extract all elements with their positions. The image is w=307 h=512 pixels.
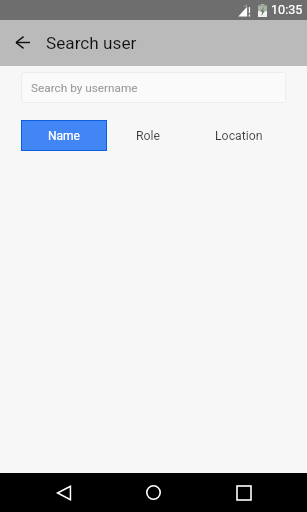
button[interactable]: Name: [22, 121, 106, 150]
staticText: Name: [48, 129, 80, 143]
staticText: Role: [136, 129, 161, 143]
button[interactable]: Back: [44, 473, 83, 512]
button[interactable]: Home: [134, 473, 173, 512]
button[interactable]: Back: [8, 28, 38, 58]
button[interactable]: Search by username: [21, 72, 286, 103]
staticText: Search by username: [31, 81, 138, 95]
button[interactable]: Location: [190, 120, 287, 151]
button[interactable]: Recents: [224, 473, 263, 512]
button[interactable]: Role: [107, 120, 190, 151]
staticText: 10:35: [271, 2, 303, 17]
staticText: Search user: [46, 33, 137, 53]
staticText: Location: [215, 129, 263, 143]
